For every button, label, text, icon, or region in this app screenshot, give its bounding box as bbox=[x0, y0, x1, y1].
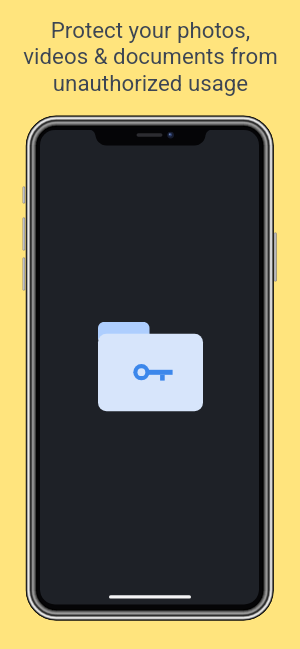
staticText: Protect your photos, videos & documents … bbox=[23, 17, 278, 97]
